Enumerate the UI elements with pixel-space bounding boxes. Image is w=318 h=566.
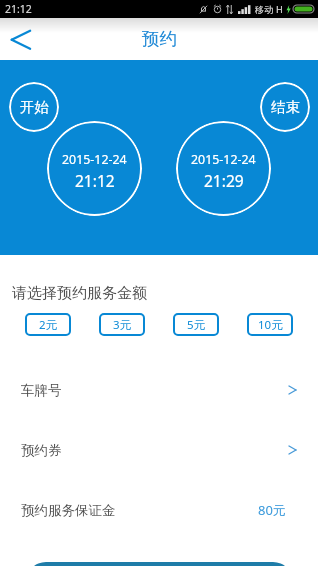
staticText: 3元: [113, 317, 132, 333]
staticText: 2元: [39, 317, 58, 333]
button[interactable]: Back: [4, 21, 40, 57]
staticText: 预约券: [21, 442, 62, 459]
staticText: 移动: [255, 4, 273, 15]
button[interactable]: 10元: [247, 313, 293, 336]
staticText: 2015-12-24: [191, 151, 256, 168]
button[interactable]: 5元: [173, 313, 219, 336]
button[interactable]: 预约券: [0, 420, 318, 480]
button[interactable]: 3元: [99, 313, 145, 336]
staticText: 预约服务保证金: [21, 502, 116, 519]
staticText: 结束: [271, 98, 300, 116]
staticText: 2015-12-24: [62, 151, 127, 168]
staticText: 21:12: [75, 170, 115, 191]
button[interactable]: 2015-12-24: [47, 121, 142, 216]
button[interactable]: 2元: [25, 313, 71, 336]
button[interactable]: 开始: [9, 82, 59, 132]
staticText: 车牌号: [21, 382, 62, 399]
button[interactable]: 预约服务保证金: [0, 480, 318, 540]
staticText: 21:12: [5, 2, 32, 16]
button[interactable]: 确定: [26, 562, 293, 566]
staticText: 开始: [20, 98, 49, 116]
staticText: 预约: [142, 28, 177, 50]
staticText: H: [276, 3, 283, 15]
staticText: 请选择预约服务金额: [12, 284, 147, 303]
staticText: 80元: [258, 501, 286, 519]
button[interactable]: 结束: [260, 82, 310, 132]
staticText: 5元: [187, 317, 206, 333]
button[interactable]: 2015-12-24: [176, 121, 271, 216]
button[interactable]: 车牌号: [0, 360, 318, 420]
staticText: 21:29: [204, 170, 244, 191]
staticText: 10元: [258, 317, 283, 333]
